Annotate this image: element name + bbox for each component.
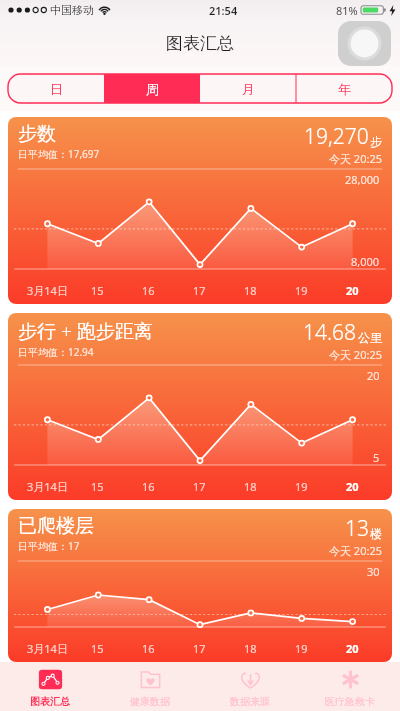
staticText: 医疗急救卡 <box>325 695 375 708</box>
staticText: 今天 20:25 <box>329 347 382 362</box>
button[interactable]: 步行 + 跑步距离 <box>8 313 392 500</box>
staticText: 19,270 <box>304 122 369 151</box>
staticText: 5 <box>373 450 380 465</box>
staticText: 14.68 <box>303 318 357 347</box>
staticText: 28,000 <box>345 172 380 187</box>
staticText: 步行 + 跑步距离 <box>18 318 153 344</box>
staticText: 3月14日 <box>27 283 68 298</box>
button[interactable]: 已爬楼层 <box>8 509 392 662</box>
other: 图表汇总 <box>37 666 64 693</box>
staticText: 图表汇总 <box>166 33 234 54</box>
staticText: 日平均值：17 <box>18 539 80 553</box>
other: 数据来源 <box>237 666 264 693</box>
staticText: 3月14日 <box>27 641 68 656</box>
other: 医疗急救卡 <box>337 666 364 693</box>
staticText: 18 <box>244 283 257 298</box>
button[interactable]: 医疗急救卡 <box>300 662 400 711</box>
staticText: 周 <box>146 81 159 97</box>
staticText: 数据来源 <box>230 695 270 708</box>
staticText: 今天 20:25 <box>329 151 382 166</box>
button[interactable]: 健康数据 <box>100 662 200 711</box>
staticText: 年 <box>338 81 351 97</box>
staticText: 15 <box>91 283 104 298</box>
button[interactable]: 图表汇总 <box>0 662 100 711</box>
staticText: 13 <box>345 514 369 543</box>
staticText: 20 <box>346 283 359 298</box>
staticText: 17 <box>193 283 206 298</box>
staticText: 15 <box>91 641 104 656</box>
staticText: 步数 <box>18 122 56 146</box>
button[interactable]: 步数 <box>8 117 392 304</box>
button[interactable]: 周 <box>104 74 200 103</box>
other: 健康数据 <box>137 666 164 693</box>
staticText: 15 <box>91 479 104 494</box>
staticText: 17 <box>193 479 206 494</box>
staticText: 20 <box>346 479 359 494</box>
staticText: 楼 <box>370 526 382 541</box>
staticText: 30 <box>367 564 380 579</box>
staticText: 日 <box>50 81 63 97</box>
staticText: 16 <box>142 641 155 656</box>
staticText: 20 <box>346 641 359 656</box>
staticText: 月 <box>242 81 255 97</box>
staticText: 20 <box>367 368 380 383</box>
staticText: 18 <box>244 641 257 656</box>
staticText: 步 <box>370 134 382 149</box>
button[interactable]: 日 <box>8 74 104 103</box>
staticText: 中国移动 <box>50 3 94 17</box>
button[interactable]: 年 <box>296 74 392 103</box>
button[interactable]: AssistiveTouch <box>338 21 391 66</box>
staticText: 16 <box>142 283 155 298</box>
staticText: 17 <box>193 641 206 656</box>
staticText: 21:54 <box>209 3 238 18</box>
button[interactable]: 月 <box>200 74 296 103</box>
staticText: 18 <box>244 479 257 494</box>
staticText: 今天 20:25 <box>329 543 382 558</box>
staticText: 日平均值：12.94 <box>18 345 94 359</box>
staticText: 8,000 <box>351 254 380 269</box>
staticText: 19 <box>295 283 308 298</box>
staticText: 图表汇总 <box>30 695 70 708</box>
staticText: 81% <box>336 3 358 18</box>
staticText: 日平均值：17,697 <box>18 147 100 161</box>
staticText: 健康数据 <box>130 695 170 708</box>
staticText: 16 <box>142 479 155 494</box>
staticText: 已爬楼层 <box>18 514 94 538</box>
staticText: 19 <box>295 641 308 656</box>
button[interactable]: 数据来源 <box>200 662 300 711</box>
staticText: 3月14日 <box>27 479 68 494</box>
staticText: 公里 <box>358 330 382 345</box>
staticText: 19 <box>295 479 308 494</box>
